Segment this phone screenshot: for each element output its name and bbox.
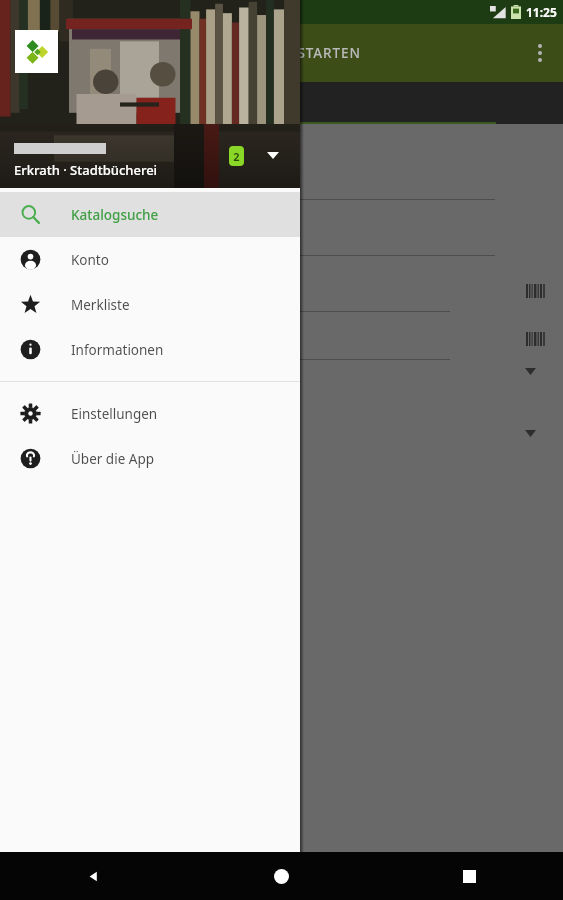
button[interactable]: More options (523, 36, 557, 70)
staticText: 11:25 (526, 4, 557, 20)
staticText: Informationen (71, 341, 164, 359)
button[interactable]: Expand (519, 422, 541, 444)
button[interactable]: Über die App (0, 436, 300, 481)
button[interactable]: Home (187, 852, 375, 900)
staticText: Einstellungen (71, 405, 158, 423)
staticText: Merkliste (71, 296, 130, 314)
staticText: 2 (233, 149, 240, 164)
button[interactable]: Back (0, 852, 187, 900)
button[interactable]: Recent apps (375, 852, 563, 900)
button[interactable]: Merkliste (0, 282, 300, 327)
button[interactable]: Scan barcode (525, 280, 547, 302)
button[interactable]: Konto (0, 237, 300, 282)
staticText: Konto (71, 251, 109, 269)
button[interactable]: SUCHE STARTEN (237, 38, 369, 68)
button[interactable]: Informationen (0, 327, 300, 372)
staticText: Erkrath · Stadtbücherei (14, 161, 158, 179)
button[interactable]: Einstellungen (0, 391, 300, 436)
button[interactable]: Katalogsuche (0, 192, 300, 237)
staticText: Katalogsuche (71, 206, 159, 224)
button[interactable]: Erkrath · Stadtbücherei (0, 0, 300, 188)
staticText: Über die App (71, 450, 155, 468)
button[interactable]: Switch library (262, 144, 284, 166)
button[interactable]: Scan barcode (525, 328, 547, 350)
button[interactable]: Expand (519, 360, 541, 382)
